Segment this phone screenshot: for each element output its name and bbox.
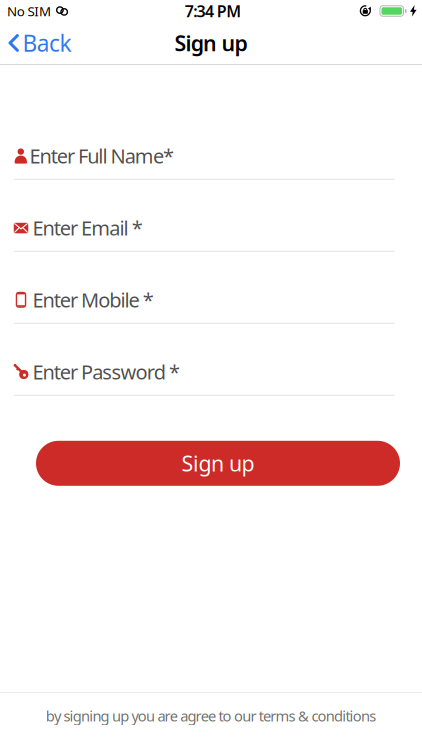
button[interactable]: Sign up [36,441,400,486]
staticText: by signing up you are agree to our terms… [46,706,376,725]
staticText: Sign up [181,449,254,477]
staticText: 7:34 PM [185,0,241,22]
button[interactable]: Enter Full Name* [0,145,422,180]
staticText: Enter Email * [32,214,143,241]
button[interactable]: Enter Mobile * [0,289,422,324]
button[interactable]: Enter Email * [0,217,422,252]
button[interactable]: Enter Password * [0,361,422,396]
staticText: Back [22,28,71,58]
staticText: Sign up [174,29,248,57]
staticText: Enter Mobile * [32,286,154,313]
staticText: Enter Password * [32,358,180,385]
staticText: Enter Full Name* [29,142,174,169]
staticText: No SIM [7,2,51,20]
button[interactable]: Back [0,28,71,58]
